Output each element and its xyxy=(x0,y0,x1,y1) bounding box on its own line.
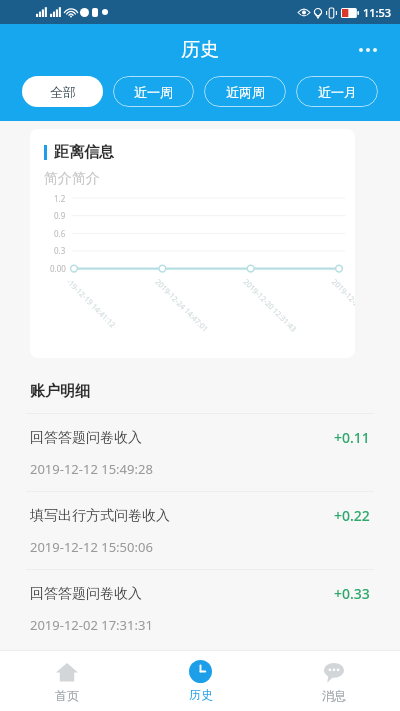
staticText: 消息 xyxy=(322,688,346,703)
button[interactable]: 消息 xyxy=(267,651,400,711)
button[interactable]: 填写出行方式问卷收入 xyxy=(0,491,400,569)
button[interactable]: 回答答题问卷收入 xyxy=(0,413,400,491)
staticText: +0.11 xyxy=(334,428,370,447)
staticText: 填写出行方式问卷收入 xyxy=(30,507,334,525)
staticText: 近两周 xyxy=(226,84,265,100)
button[interactable]: 首页 xyxy=(0,651,134,711)
button[interactable]: 近一周 xyxy=(113,76,194,107)
staticText: 2019-12-12 15:50:06 xyxy=(30,538,153,556)
staticText: 回答答题问卷收入 xyxy=(30,585,334,603)
staticText: +0.22 xyxy=(334,506,370,525)
staticText: 2019-12-02 17:31:31 xyxy=(30,616,153,634)
button[interactable]: More options xyxy=(346,28,390,72)
button[interactable]: 历史 xyxy=(134,651,267,711)
button[interactable]: 近一月 xyxy=(296,76,378,107)
staticText: 全部 xyxy=(50,84,76,100)
staticText: 近一月 xyxy=(318,84,357,100)
button[interactable]: 回答答题问卷收入 xyxy=(0,569,400,647)
staticText: 回答答题问卷收入 xyxy=(30,429,334,447)
button[interactable]: 近两周 xyxy=(204,76,286,107)
staticText: 历史 xyxy=(181,38,219,62)
staticText: 账户明细 xyxy=(30,382,90,401)
staticText: +0.33 xyxy=(334,584,370,603)
staticText: 距离信息 xyxy=(54,143,114,162)
staticText: 简介简介 xyxy=(44,170,100,188)
staticText: 11:53 xyxy=(363,5,392,20)
staticText: 历史 xyxy=(189,687,213,702)
button[interactable]: 全部 xyxy=(22,76,103,107)
staticText: 近一周 xyxy=(134,84,173,100)
staticText: 首页 xyxy=(55,688,79,703)
staticText: 2019-12-12 15:49:28 xyxy=(30,460,153,478)
